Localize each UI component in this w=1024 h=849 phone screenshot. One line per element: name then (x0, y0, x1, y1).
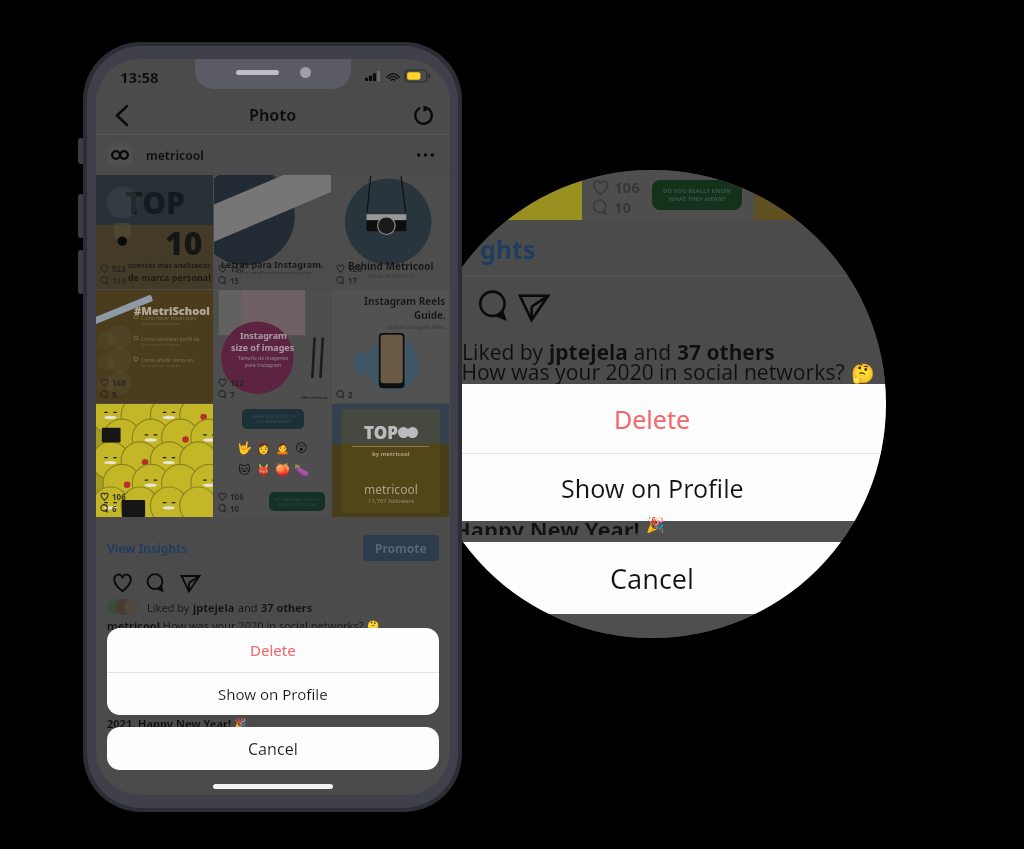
staticText: ¿SABES REALMENTE LO QUE SIGNIFICAN? (250, 414, 296, 424)
button[interactable]: #MetriSchool (96, 290, 213, 403)
staticText: Happy New Year! (454, 514, 646, 535)
staticText: 128 (348, 263, 362, 274)
button[interactable]: Back (104, 97, 140, 133)
button[interactable]: Cancel (107, 727, 439, 770)
staticText: jptejela (549, 338, 628, 367)
staticText: 2 (348, 389, 353, 400)
staticText: Detrás de Metricool (368, 273, 415, 280)
staticText: TOP (125, 182, 185, 223)
staticText: ghts (480, 232, 536, 266)
staticText: Show on Profile (561, 471, 744, 505)
staticText: DO YOU REALLY KNOW WHAT THEY MEAN? (274, 497, 320, 507)
staticText: Liked by (147, 600, 193, 615)
staticText: Guide. (414, 308, 446, 322)
staticText: Delete (614, 402, 691, 436)
staticText: and (628, 338, 677, 367)
staticText: 37 others (677, 338, 775, 367)
button[interactable]: Share (175, 568, 205, 597)
staticText: 150 (230, 263, 244, 274)
staticText: How to add different fonts on Instagram (235, 270, 311, 275)
staticText: 🍑 (275, 463, 290, 477)
staticText: Cómo añadir letras en Instagram (141, 357, 210, 364)
staticText: 106 (614, 177, 640, 197)
staticText: 15 (230, 275, 240, 286)
staticText: 🤔 (367, 620, 380, 632)
staticText: 17 (348, 275, 358, 286)
button[interactable]: Behind Metricool (332, 175, 449, 289)
staticText: 🐱 (238, 463, 251, 477)
staticText: 523 (112, 263, 126, 274)
staticText: 122 (230, 377, 244, 388)
button[interactable]: TOP (332, 404, 449, 517)
button[interactable]: 106 (96, 404, 213, 517)
staticText: 106 (112, 491, 126, 502)
staticText: jptejela (193, 600, 235, 615)
staticText: 37 others (261, 600, 313, 615)
staticText: Tips of useful for Instagram (141, 364, 181, 368)
staticText: 🍆 (294, 463, 309, 477)
staticText: Promote (375, 540, 427, 556)
staticText: Tips of useful for Instagram (141, 322, 181, 326)
staticText: Guía de Instagram Reels. (387, 324, 446, 331)
staticText: 10 (165, 221, 203, 265)
button[interactable]: ¿SABES REALMENTE LO QUE SIGNIFICAN? (214, 404, 331, 517)
staticText: 106 (230, 491, 244, 502)
staticText: 119 (112, 275, 126, 286)
button[interactable]: Instagram Reels (332, 290, 449, 403)
staticText: 🎉 (646, 516, 665, 534)
staticText: metricool (146, 147, 204, 163)
button[interactable]: Promote (363, 535, 439, 561)
button[interactable]: Instagram (214, 290, 331, 403)
staticText: 10 (614, 197, 632, 217)
staticText: 🙍 (275, 441, 290, 455)
staticText: 6 (112, 503, 117, 514)
staticText: 10 (230, 503, 240, 514)
button[interactable]: Refresh (406, 98, 440, 132)
staticText: 🤟 (237, 441, 252, 455)
staticText: and (235, 600, 261, 615)
staticText: 👹 (256, 463, 271, 477)
staticText: metricool (364, 481, 418, 497)
staticText: Letras para Instagram. (221, 258, 324, 270)
staticText: #MetriSchool (301, 395, 328, 400)
button[interactable]: Like (107, 568, 137, 597)
staticText: 168 (112, 377, 126, 388)
staticText: Instagram Reels (364, 294, 446, 308)
staticText: 11,767 followers (368, 497, 415, 505)
staticText: de marca personal (128, 271, 211, 283)
button[interactable]: Delete (107, 628, 439, 672)
staticText: 5 (112, 389, 117, 400)
staticText: size of images (231, 341, 295, 353)
staticText: 🤔 (851, 362, 864, 384)
staticText: Cómo optimizar perfil de TikTok (141, 336, 210, 343)
staticText: Cómo hacer frases para Instagram (141, 315, 210, 322)
staticText: Instagram (240, 329, 287, 341)
staticText: Show on Profile (218, 684, 328, 704)
staticText: Cancel (248, 738, 298, 760)
staticText: #MetriSchool (134, 303, 210, 318)
staticText: 7 (230, 389, 235, 400)
button[interactable]: TOP (96, 175, 213, 289)
staticText: 13:58 (120, 67, 159, 87)
staticText: Photo (249, 104, 297, 126)
staticText: para Instagram (245, 362, 282, 369)
staticText: Behind Metricool (348, 259, 434, 273)
staticText: How was your 2020 in social networks? (456, 358, 851, 387)
staticText: Tamaño de imagenes (238, 355, 289, 362)
staticText: metricool (107, 618, 160, 633)
button[interactable]: View Insights (107, 540, 188, 556)
button[interactable]: Comment (141, 568, 171, 597)
staticText: 😲 (295, 441, 308, 455)
staticText: 👩 (256, 441, 271, 455)
staticText: Liked by (462, 338, 549, 367)
staticText: DO YOU REALLY KNOW WHAT THEY MEAN? (663, 187, 731, 203)
staticText: cuentas más analizadas (128, 261, 211, 271)
staticText: by metricool (372, 450, 410, 458)
staticText: Tips of useful for Instagram (141, 343, 181, 347)
button[interactable]: Letras para Instagram. (214, 175, 331, 289)
button[interactable]: Show on Profile (107, 673, 439, 715)
button[interactable]: More options (411, 141, 439, 169)
staticText: 🎉 (234, 718, 247, 730)
staticText: ricool (418, 358, 456, 387)
staticText: TOP (364, 421, 398, 444)
